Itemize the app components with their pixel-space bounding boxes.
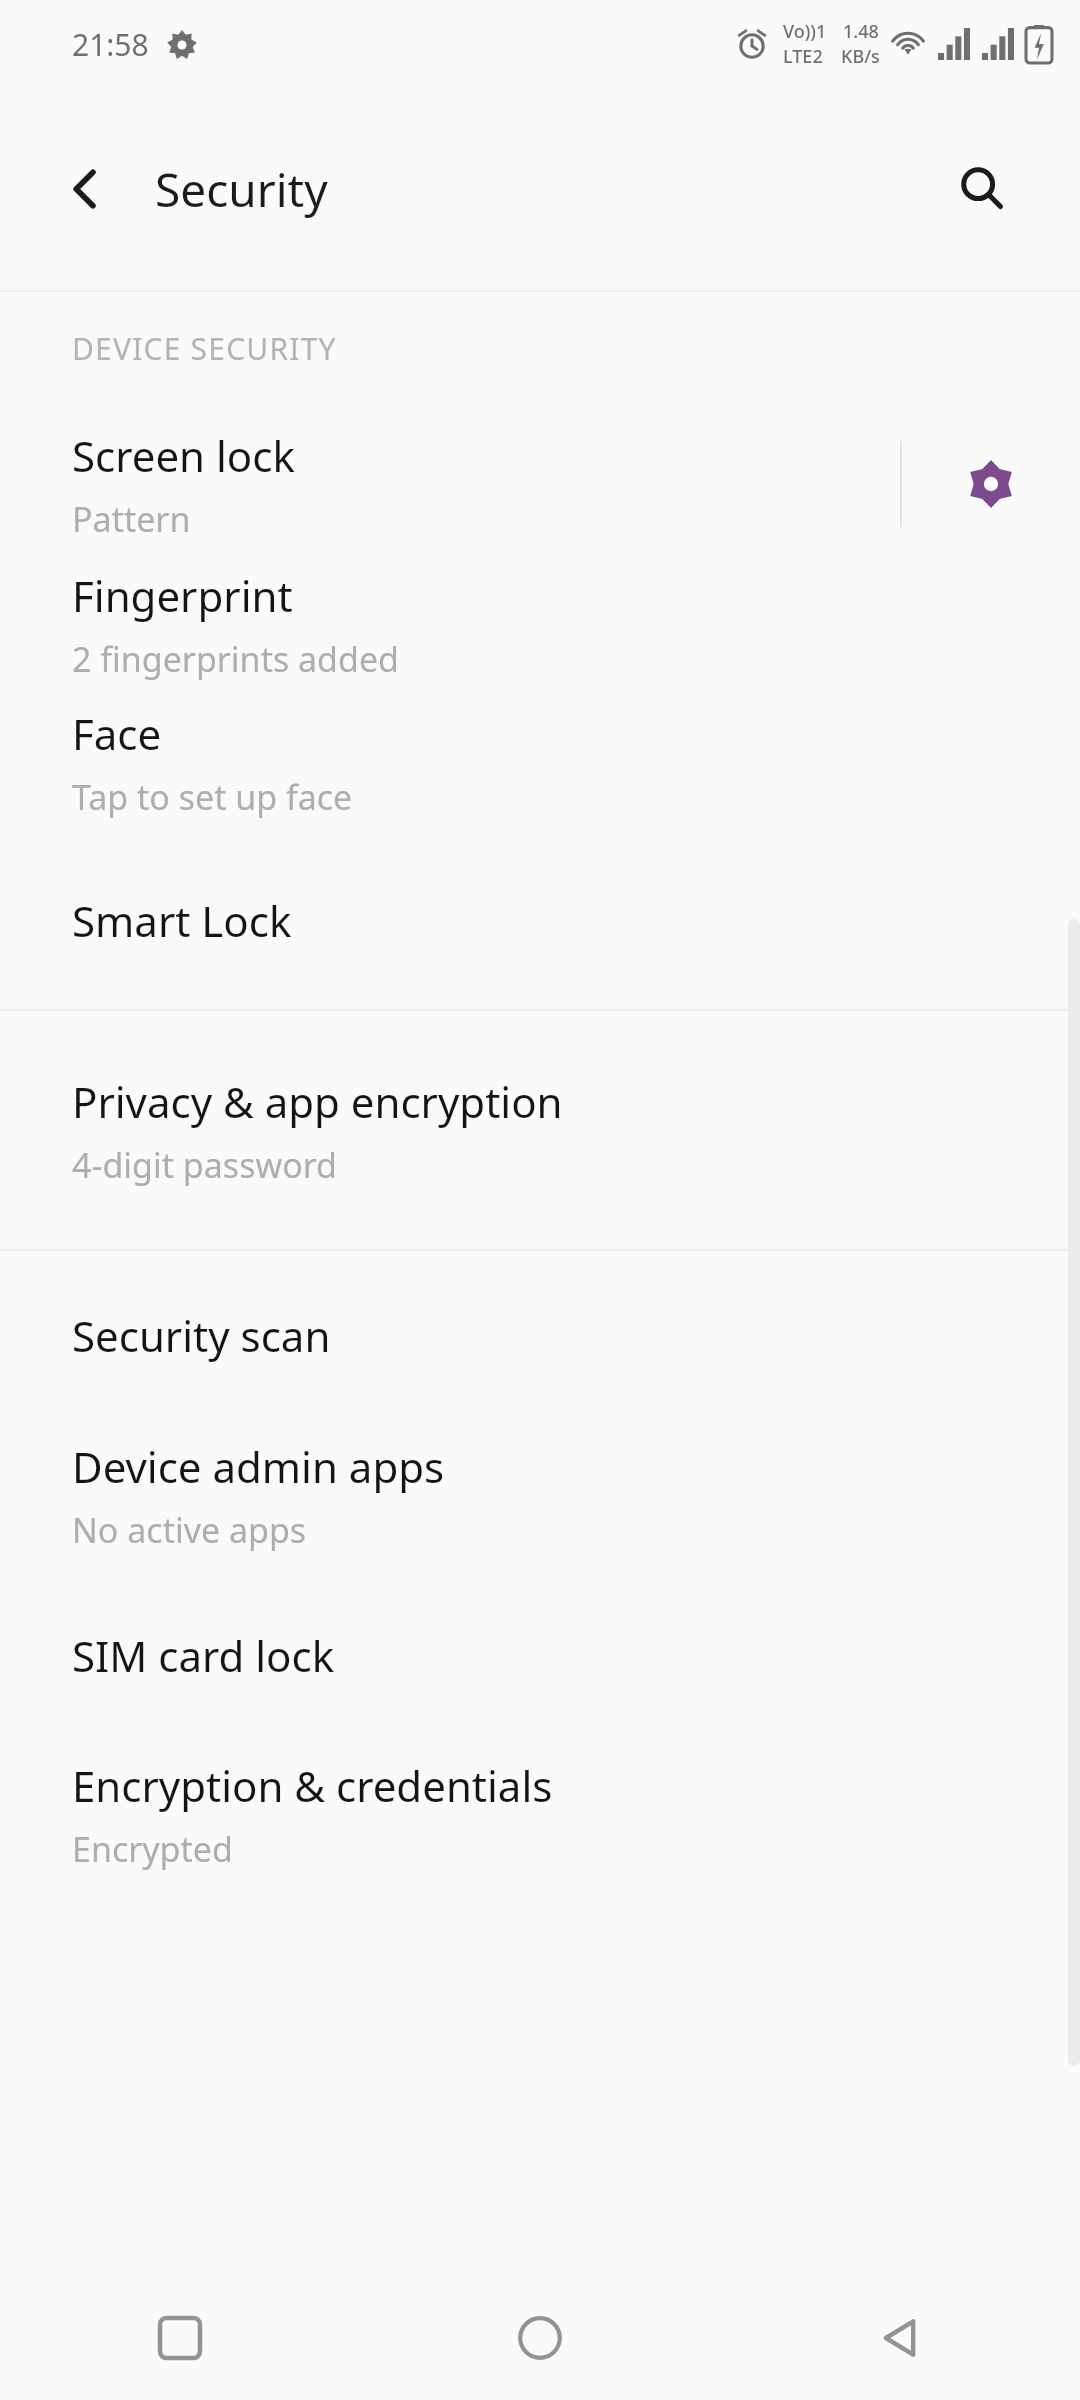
button[interactable]: Back xyxy=(720,2276,1080,2400)
button[interactable]: Smart Lock xyxy=(0,831,1080,1009)
staticText: Fingerprint xyxy=(72,567,293,624)
button[interactable]: Security scan xyxy=(0,1251,1080,1419)
button[interactable]: Fingerprint xyxy=(0,555,1080,693)
staticText: Security xyxy=(155,158,328,221)
staticText: 4-digit password xyxy=(72,1142,337,1188)
staticText: Security scan xyxy=(72,1307,331,1364)
staticText: Smart Lock xyxy=(72,892,292,949)
button[interactable]: Encryption & credentials xyxy=(0,1739,1080,1889)
button[interactable]: Home xyxy=(360,2276,720,2400)
button[interactable]: Recents xyxy=(0,2276,360,2400)
button[interactable]: Screen lock xyxy=(0,413,1080,555)
staticText: KB/s xyxy=(841,44,880,69)
button[interactable]: Screen lock settings xyxy=(902,413,1080,555)
staticText: Device admin apps xyxy=(72,1438,445,1495)
button[interactable]: Face xyxy=(0,693,1080,831)
staticText: Vo))1 xyxy=(783,19,827,44)
staticText: No active apps xyxy=(72,1507,307,1553)
staticText: Face xyxy=(72,705,162,762)
staticText: DEVICE SECURITY xyxy=(72,328,337,369)
button[interactable]: SIM card lock xyxy=(0,1571,1080,1739)
staticText: Privacy & app encryption xyxy=(72,1073,563,1130)
staticText: Pattern xyxy=(72,496,191,542)
staticText: 2 fingerprints added xyxy=(72,636,400,682)
staticText: Tap to set up face xyxy=(72,774,353,820)
staticText: Screen lock xyxy=(72,427,295,484)
button[interactable]: Back xyxy=(46,150,124,228)
staticText: Encrypted xyxy=(72,1826,233,1872)
button[interactable]: Device admin apps xyxy=(0,1419,1080,1571)
staticText: 21:58 xyxy=(72,24,149,65)
staticText: 1.48 xyxy=(843,19,879,44)
staticText: LTE2 xyxy=(783,44,823,69)
button[interactable]: Search xyxy=(942,149,1022,229)
button[interactable]: Privacy & app encryption xyxy=(0,1011,1080,1249)
staticText: Encryption & credentials xyxy=(72,1757,553,1814)
staticText: SIM card lock xyxy=(72,1627,335,1684)
